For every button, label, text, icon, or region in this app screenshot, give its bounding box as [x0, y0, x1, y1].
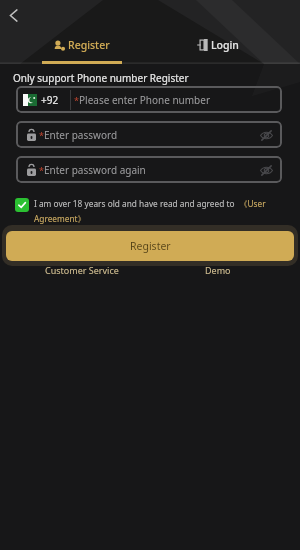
button[interactable]: * — [16, 121, 282, 148]
staticText: Only support Phone number Register — [13, 71, 189, 85]
button[interactable]: Demo — [199, 262, 237, 278]
button[interactable]: Register — [6, 231, 294, 261]
staticText: Register — [68, 38, 110, 52]
staticText: Please enter Phone number — [79, 93, 211, 107]
button[interactable]: Back — [0, 0, 26, 30]
staticText: Customer Service — [45, 264, 119, 276]
staticText: Login — [211, 38, 239, 52]
button[interactable]: Login — [150, 38, 286, 64]
button[interactable]: +92 — [16, 86, 282, 113]
staticText: * — [39, 164, 44, 176]
staticText: Agreement》 — [34, 213, 86, 224]
staticText: +92 — [41, 93, 59, 107]
button[interactable]: Register — [14, 38, 150, 64]
staticText: Enter password again — [44, 163, 146, 177]
staticText: Register — [130, 239, 171, 253]
button[interactable]: I am over 18 years old and have read and… — [15, 198, 284, 224]
staticText: Demo — [205, 264, 231, 276]
staticText: * — [74, 94, 79, 106]
staticText: Enter password — [44, 128, 118, 142]
button[interactable]: Customer Service — [39, 262, 125, 278]
staticText: I am over 18 years old and have read and… — [34, 198, 237, 209]
button[interactable]: Show password — [255, 124, 277, 146]
staticText: * — [39, 129, 44, 141]
staticText: 《User — [237, 198, 266, 209]
button[interactable]: * — [16, 156, 282, 183]
button[interactable]: Show password — [255, 159, 277, 181]
